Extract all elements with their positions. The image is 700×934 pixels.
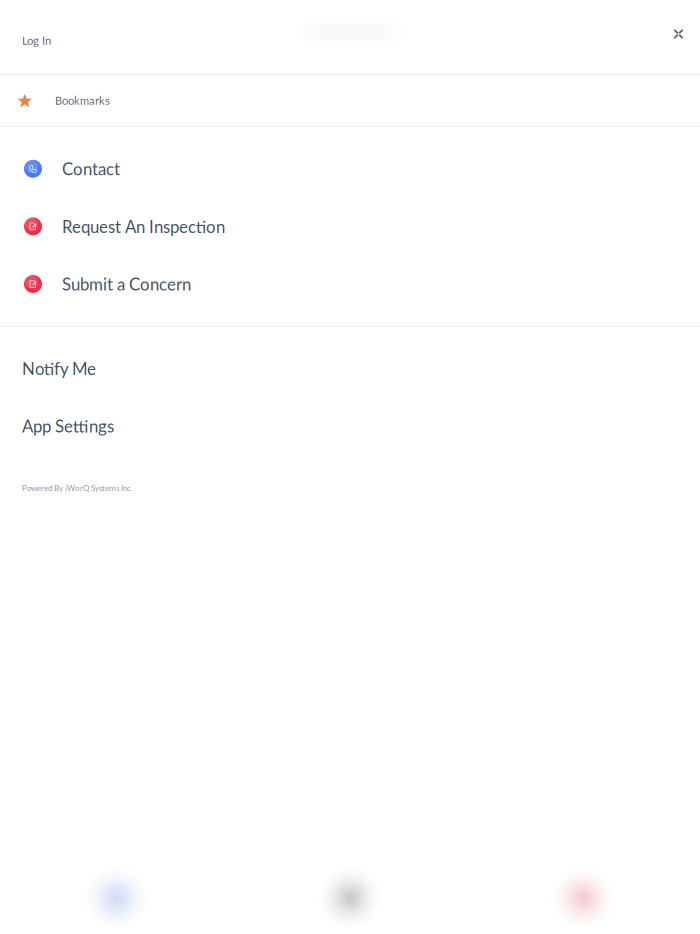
staticText: Bookmarks bbox=[55, 94, 110, 107]
staticText: Submit a Concern bbox=[62, 274, 191, 294]
button[interactable]: App Settings bbox=[0, 397, 700, 455]
button[interactable]: Notify Me bbox=[0, 340, 700, 397]
staticText: Contact bbox=[62, 159, 120, 179]
button[interactable]: Close bbox=[659, 17, 700, 56]
button[interactable]: Bookmarks bbox=[0, 75, 700, 126]
button[interactable]: Home bbox=[0, 862, 233, 934]
staticText: Notify Me bbox=[22, 358, 96, 379]
button[interactable]: Search bbox=[233, 862, 467, 934]
staticText: App Settings bbox=[22, 416, 114, 436]
button[interactable]: Submit a Concern bbox=[0, 255, 700, 313]
button[interactable]: Contact bbox=[0, 140, 700, 198]
button[interactable]: Log In bbox=[0, 13, 51, 61]
staticText: Log In bbox=[22, 34, 51, 47]
button[interactable]: Request An Inspection bbox=[0, 198, 700, 255]
staticText: Request An Inspection bbox=[62, 216, 225, 236]
button[interactable]: More bbox=[467, 862, 700, 934]
staticText: Powered By iWorQ Systems Inc. bbox=[22, 483, 133, 493]
